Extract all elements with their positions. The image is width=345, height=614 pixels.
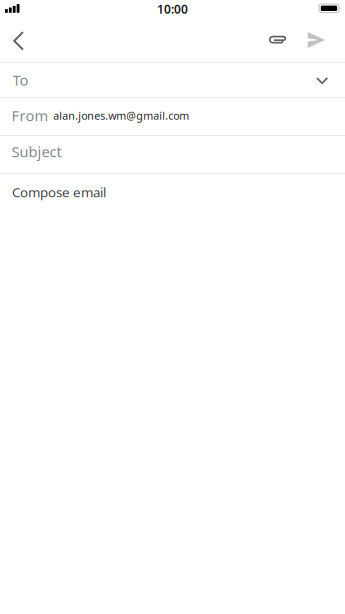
button[interactable]: Back xyxy=(0,22,40,62)
staticText: 10:00 xyxy=(157,1,188,17)
button[interactable]: To xyxy=(0,63,303,97)
button[interactable]: Add Cc/Bcc xyxy=(303,63,345,97)
button[interactable]: Send xyxy=(297,22,345,62)
staticText: To xyxy=(12,70,28,90)
staticText: Subject xyxy=(11,142,61,161)
staticText: Compose email xyxy=(12,183,106,201)
staticText: alan.jones.wm@gmail.com xyxy=(53,108,189,123)
button[interactable]: Attach file xyxy=(259,22,297,62)
staticText: From xyxy=(11,106,48,125)
button[interactable]: Compose email xyxy=(0,174,345,614)
button[interactable]: Subject xyxy=(0,136,345,173)
button[interactable]: From xyxy=(0,98,345,135)
